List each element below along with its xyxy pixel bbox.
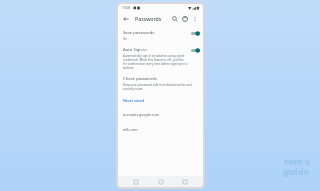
staticText: Save passwords [123, 30, 155, 36]
button[interactable]: Toggle [191, 48, 200, 53]
button[interactable]: Auto Sign-in [118, 44, 203, 73]
staticText: Passwords [135, 15, 162, 22]
button[interactable]: accounts.google.com [118, 107, 203, 122]
staticText: credentials. When this feature is off, y… [123, 58, 188, 62]
staticText: Never saved [123, 98, 145, 103]
button[interactable]: Recents [178, 176, 192, 187]
staticText: Automatically sign in to websites using … [123, 54, 185, 58]
button[interactable]: Search [170, 14, 180, 24]
button[interactable]: Back [121, 14, 131, 24]
staticText: mlb.com [123, 127, 138, 132]
staticText: Check passwords [123, 76, 157, 82]
button[interactable]: Home [154, 176, 168, 187]
button[interactable]: Check passwords [118, 73, 203, 94]
staticText: 10:08 [122, 6, 131, 10]
staticText: tom's [284, 155, 310, 167]
staticText: On [123, 37, 128, 41]
staticText: security issues [123, 87, 143, 91]
staticText: website. [123, 66, 135, 70]
button[interactable]: More options [190, 14, 200, 24]
staticText: guide [283, 165, 310, 177]
button[interactable]: Toggle [191, 31, 200, 36]
button[interactable]: mlb.com [118, 122, 203, 137]
staticText: Auto Sign-in [123, 47, 147, 53]
staticText: for confirmation every time before signi… [123, 62, 188, 66]
staticText: accounts.google.com [123, 112, 160, 117]
button[interactable]: Help [180, 14, 190, 24]
button[interactable]: Back [129, 176, 143, 187]
button[interactable]: Never saved [118, 94, 203, 107]
button[interactable]: Save passwords [118, 27, 203, 44]
staticText: Keep your passwords safe from data breac… [123, 83, 197, 87]
